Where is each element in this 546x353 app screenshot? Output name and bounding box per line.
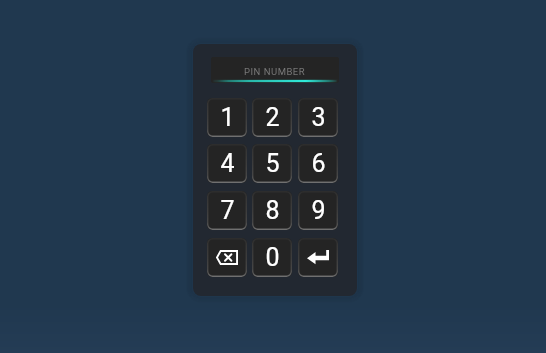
button[interactable]: 2 xyxy=(252,98,292,137)
staticText: 9 xyxy=(311,196,326,225)
staticText: 5 xyxy=(265,149,280,178)
staticText: 7 xyxy=(220,196,235,225)
staticText: 8 xyxy=(265,196,280,225)
button[interactable]: 9 xyxy=(298,191,338,230)
button[interactable]: 0 xyxy=(252,238,292,277)
staticText: 1 xyxy=(220,103,235,132)
button[interactable]: Backspace xyxy=(207,238,247,277)
button[interactable]: 4 xyxy=(207,144,247,183)
button[interactable]: 7 xyxy=(207,191,247,230)
staticText: 4 xyxy=(220,149,235,178)
button[interactable]: 6 xyxy=(298,144,338,183)
button[interactable]: Enter xyxy=(298,238,338,277)
staticText: 3 xyxy=(311,103,326,132)
staticText: 6 xyxy=(311,149,326,178)
button[interactable]: 1 xyxy=(207,98,247,137)
button[interactable]: 8 xyxy=(252,191,292,230)
button[interactable]: PIN NUMBER xyxy=(211,57,339,83)
staticText: 2 xyxy=(265,103,280,132)
button[interactable]: 5 xyxy=(252,144,292,183)
staticText: 0 xyxy=(265,243,280,272)
staticText: PIN NUMBER xyxy=(244,66,306,77)
button[interactable]: 3 xyxy=(298,98,338,137)
